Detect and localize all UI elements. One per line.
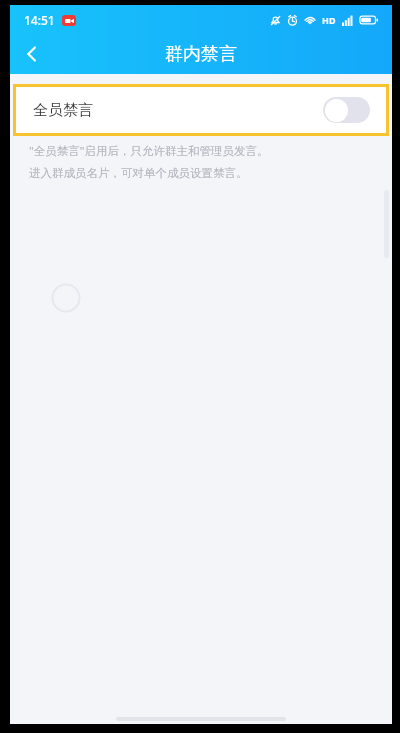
button[interactable]: Mute all members toggle — [323, 97, 370, 123]
staticText: 进入群成员名片，可对单个成员设置禁言。 — [29, 166, 248, 180]
staticText: 14:51 — [24, 12, 55, 28]
button[interactable]: Back — [10, 32, 54, 76]
staticText: 群内禁言 — [165, 43, 237, 66]
button[interactable]: 全员禁言 — [16, 87, 386, 133]
staticText: HD — [322, 14, 336, 26]
staticText: 全员禁言 — [33, 101, 93, 120]
staticText: "全员禁言"启用后，只允许群主和管理员发言。 — [29, 143, 269, 159]
